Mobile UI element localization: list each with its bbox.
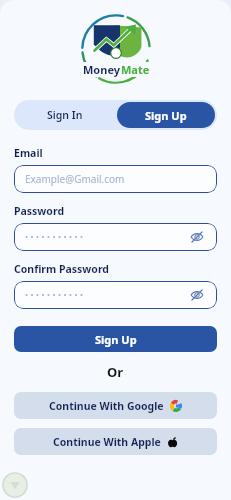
button[interactable]: Continue With Google	[14, 392, 217, 419]
button[interactable]: Sign In	[14, 100, 115, 130]
staticText: Example@Gmail.com	[25, 172, 125, 186]
staticText: Sign Up	[95, 332, 137, 347]
staticText: Money	[83, 62, 121, 77]
staticText: Continue With Apple	[53, 435, 161, 449]
staticText: Email	[14, 146, 43, 160]
staticText: Sign In	[47, 108, 83, 122]
button[interactable]: Toggle password visibility	[14, 281, 217, 309]
button[interactable]: Continue With Apple	[14, 428, 217, 455]
button[interactable]: Toggle password visibility	[188, 286, 206, 304]
staticText: Password	[14, 204, 65, 218]
button[interactable]: Toggle password visibility	[14, 223, 217, 251]
staticText: Mate	[121, 62, 150, 77]
staticText: Confirm Password	[14, 262, 110, 276]
staticText: Or	[107, 363, 124, 381]
button[interactable]: Sign Up	[117, 102, 215, 128]
staticText: Continue With Google	[49, 399, 164, 413]
button[interactable]: Example@Gmail.com	[14, 165, 217, 193]
button[interactable]: Sign Up	[14, 326, 217, 352]
button[interactable]: Toggle password visibility	[188, 228, 206, 246]
staticText: Sign Up	[145, 108, 187, 123]
